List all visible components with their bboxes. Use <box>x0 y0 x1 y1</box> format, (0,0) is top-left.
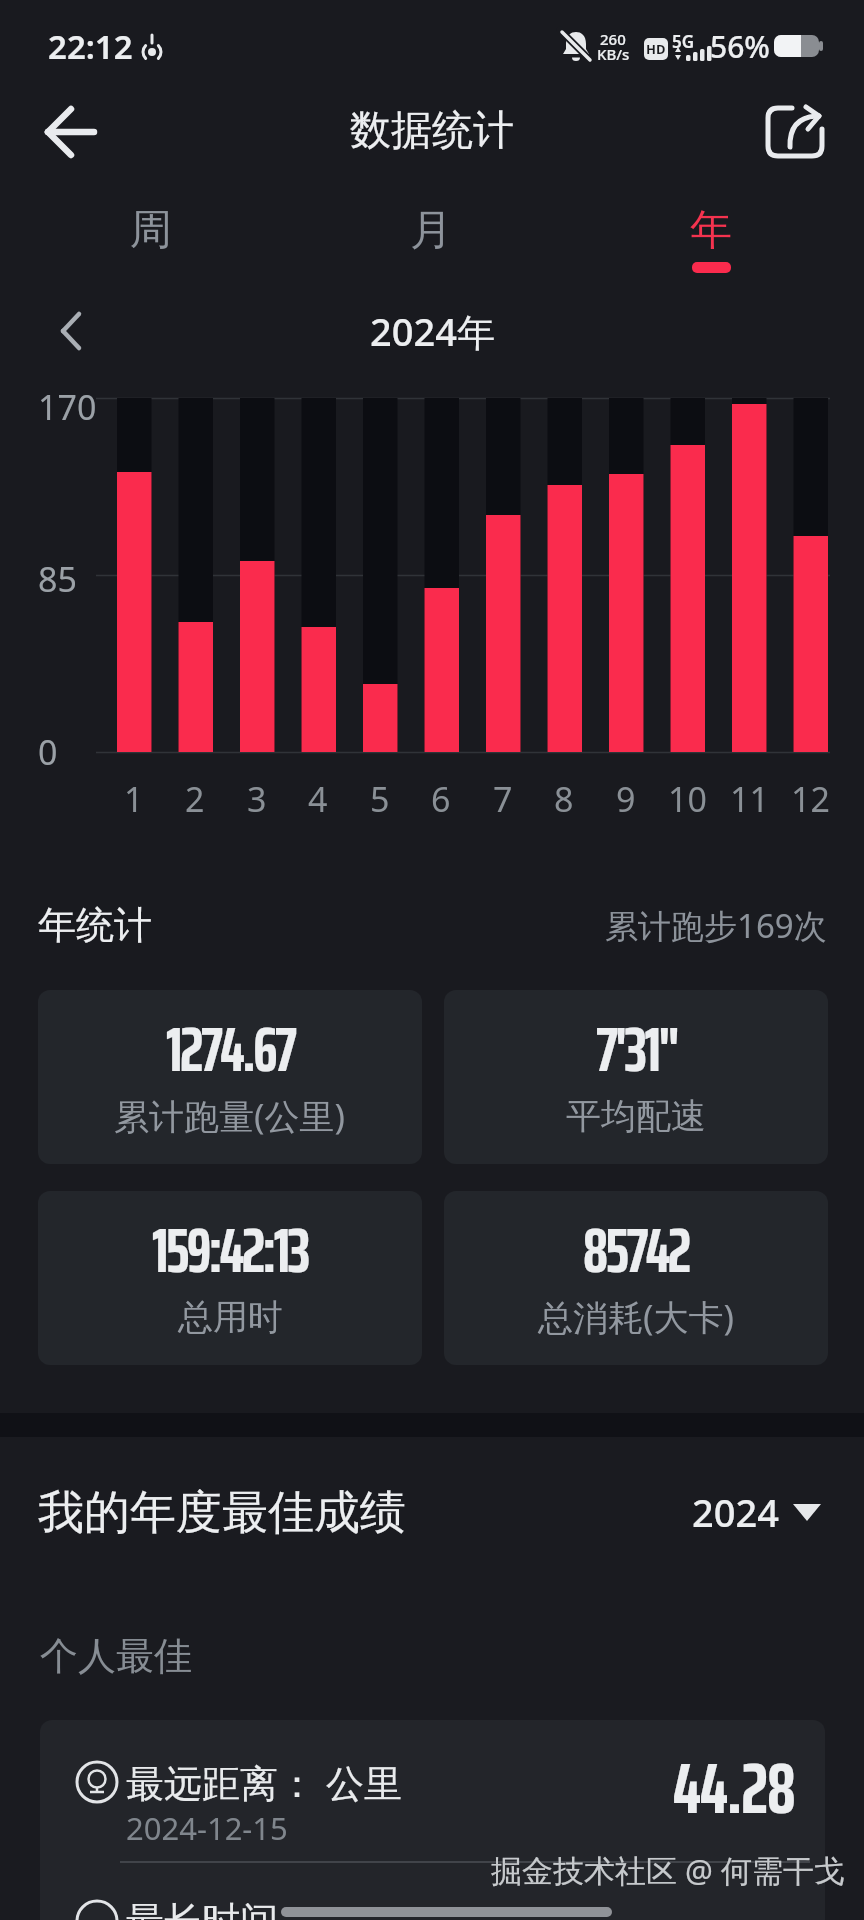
button[interactable] <box>752 92 846 170</box>
button[interactable]: 1274.67 <box>38 990 422 1164</box>
staticText: 累计跑步169次 <box>605 903 827 948</box>
staticText: 总消耗(大卡) <box>538 1293 735 1341</box>
staticText: 85 <box>38 556 77 598</box>
staticText: 3 <box>247 776 267 818</box>
staticText: 总用时 <box>178 1295 283 1339</box>
staticText: 159:42:13 <box>152 1202 308 1300</box>
staticText: 数据统计 <box>350 105 514 157</box>
staticText: 7 <box>493 776 513 818</box>
staticText: 2024 <box>692 1486 779 1538</box>
staticText: 月 <box>410 204 452 257</box>
staticText: 2024-12-15 <box>126 1807 288 1849</box>
staticText: 1274.67 <box>166 1001 295 1099</box>
button[interactable] <box>40 300 104 362</box>
staticText: 年 <box>690 204 732 257</box>
staticText: 最长时间 <box>126 1897 278 1920</box>
staticText: 个人最佳 <box>40 1632 192 1680</box>
staticText: 掘金技术社区 @ 何需干戈 <box>491 1849 845 1891</box>
button[interactable] <box>28 98 118 166</box>
staticText: 2024年 <box>370 305 495 357</box>
staticText: KB/s <box>597 44 630 62</box>
staticText: 10 <box>668 776 707 818</box>
staticText: 累计跑量(公里) <box>114 1092 346 1140</box>
staticText: 9 <box>616 776 636 818</box>
staticText: 周 <box>130 204 172 257</box>
button[interactable]: 年 <box>0 0 260 80</box>
staticText: 22:12 <box>48 24 133 66</box>
staticText: 260 <box>600 29 626 47</box>
staticText: 7'31" <box>596 1001 677 1099</box>
staticText: 平均配速 <box>566 1094 706 1138</box>
button[interactable] <box>56 1740 816 1850</box>
button[interactable]: 周 <box>0 0 260 80</box>
staticText: 0 <box>38 729 58 771</box>
staticText: 8 <box>554 776 574 818</box>
button[interactable]: 月 <box>0 0 260 80</box>
staticText: 1 <box>124 776 144 818</box>
staticText: HD <box>646 40 666 58</box>
button[interactable]: 85742 <box>444 1191 828 1365</box>
button[interactable]: 2024 <box>680 1480 830 1544</box>
staticText: 4 <box>308 776 328 818</box>
staticText: 5G <box>672 30 695 50</box>
button[interactable]: 159:42:13 <box>38 1191 422 1365</box>
staticText: 12 <box>791 776 830 818</box>
staticText: 年统计 <box>38 901 152 949</box>
staticText: 最远距离： 公里 <box>126 1756 402 1806</box>
staticText: 我的年度最佳成绩 <box>38 1484 406 1542</box>
staticText: 11 <box>730 776 769 818</box>
staticText: 170 <box>38 384 97 426</box>
staticText: 2 <box>185 776 205 818</box>
staticText: 5 <box>370 776 390 818</box>
button[interactable]: 7'31" <box>444 990 828 1164</box>
staticText: 44.28 <box>673 1732 795 1832</box>
staticText: 85742 <box>583 1202 689 1300</box>
staticText: 56% <box>710 26 770 64</box>
staticText: 6 <box>431 776 451 818</box>
